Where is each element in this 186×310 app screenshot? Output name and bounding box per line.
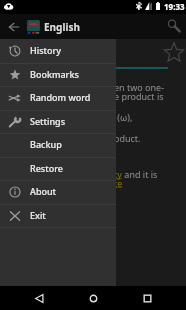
staticText: ce xyxy=(113,177,123,189)
button[interactable]: Search xyxy=(162,14,184,39)
staticText: e product is xyxy=(114,90,164,102)
staticText: Restore xyxy=(30,162,63,174)
button[interactable]: Back xyxy=(0,14,27,39)
button[interactable]: History xyxy=(0,39,116,63)
button[interactable]: Random word xyxy=(0,86,116,110)
staticText: en two one- xyxy=(114,81,165,93)
button[interactable]: Exit xyxy=(0,204,116,228)
staticText: About xyxy=(30,185,57,197)
button[interactable]: About xyxy=(0,180,116,204)
button[interactable]: Back xyxy=(29,286,49,310)
staticText: English xyxy=(44,20,80,34)
staticText: Bookmarks xyxy=(30,68,79,80)
staticText: 19:33 xyxy=(164,1,185,12)
staticText: and it is xyxy=(122,168,158,180)
staticText: Exit xyxy=(30,209,46,221)
staticText: Settings xyxy=(30,115,66,127)
button[interactable]: Home xyxy=(83,286,103,310)
staticText: Backup xyxy=(30,138,62,150)
button[interactable]: Recent apps xyxy=(137,286,157,310)
button[interactable]: Bookmark xyxy=(162,42,186,64)
staticText: Random word xyxy=(30,91,91,103)
button[interactable]: Settings xyxy=(0,110,116,134)
staticText: ̃ (ω), xyxy=(115,111,133,123)
staticText: History xyxy=(30,44,62,56)
button[interactable]: Backup xyxy=(0,133,116,157)
button[interactable]: Restore xyxy=(0,157,116,181)
staticText: cy xyxy=(113,168,122,180)
staticText: oduct. xyxy=(114,132,141,144)
button[interactable]: Bookmarks xyxy=(0,63,116,87)
